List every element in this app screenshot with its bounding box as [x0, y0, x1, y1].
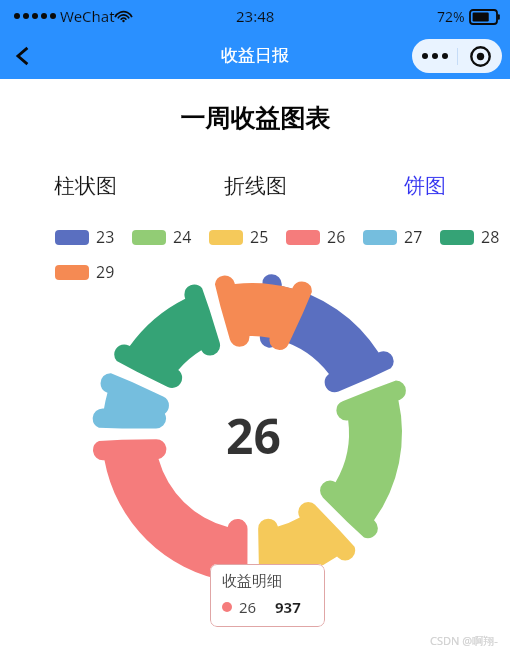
button[interactable]: 27 [363, 226, 423, 248]
staticText: 收益日报 [221, 45, 289, 66]
staticText: 23 [96, 226, 115, 248]
staticText: 折线图 [224, 173, 287, 199]
button[interactable]: 26 [286, 226, 346, 248]
button[interactable]: 饼图 [394, 168, 456, 204]
button[interactable]: 23 [55, 226, 115, 248]
staticText: 26 [327, 226, 346, 248]
button[interactable]: 柱状图 [44, 168, 127, 204]
staticText: 24 [173, 226, 192, 248]
button[interactable]: 24 [132, 226, 192, 248]
staticText: 29 [96, 261, 115, 283]
button[interactable]: 29 [55, 261, 115, 283]
staticText: 26 [239, 597, 257, 617]
staticText: 72% [437, 7, 465, 26]
button[interactable]: Menu [412, 39, 502, 73]
staticText: 一周收益图表 [180, 103, 330, 134]
staticText: 饼图 [404, 173, 446, 199]
staticText: 收益明细 [222, 572, 282, 591]
staticText: 25 [250, 226, 269, 248]
button[interactable]: 25 [209, 226, 269, 248]
button[interactable]: 28 [440, 226, 500, 248]
staticText: 27 [404, 226, 423, 248]
button[interactable]: Back [0, 33, 46, 79]
button[interactable]: 折线图 [214, 168, 297, 204]
staticText: CSDN @啊翔- [430, 633, 498, 648]
staticText: 26 [226, 403, 281, 468]
staticText: 柱状图 [54, 173, 117, 199]
staticText: WeChat [60, 6, 115, 26]
staticText: 937 [275, 597, 301, 617]
staticText: 23:48 [236, 6, 275, 26]
staticText: 28 [481, 226, 500, 248]
